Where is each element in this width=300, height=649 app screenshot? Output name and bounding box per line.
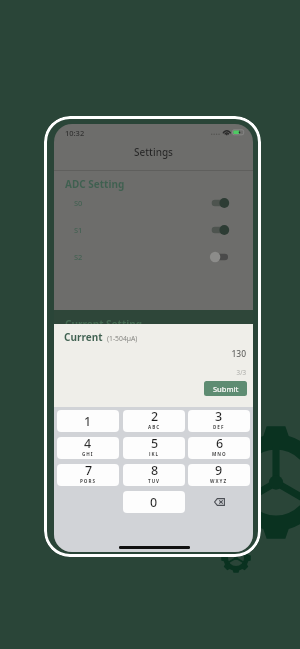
staticText: MNO: [212, 451, 227, 456]
button[interactable]: 4: [57, 437, 119, 459]
button[interactable]: S0: [54, 189, 253, 216]
button[interactable]: 0: [123, 491, 185, 513]
staticText: S0: [74, 198, 83, 208]
button[interactable]: 2: [123, 410, 185, 432]
button[interactable]: Submit: [204, 381, 247, 396]
staticText: 130: [54, 348, 246, 360]
button[interactable]: 8: [123, 464, 185, 486]
staticText: 1: [84, 413, 92, 430]
staticText: 0: [150, 494, 158, 511]
staticText: 2: [151, 410, 159, 425]
button[interactable]: 6: [188, 437, 250, 459]
staticText: 3/3: [54, 368, 246, 376]
button[interactable]: S2: [54, 243, 253, 270]
staticText: 8: [151, 464, 159, 479]
staticText: S2: [74, 252, 83, 262]
staticText: GHI: [82, 451, 94, 456]
staticText: 7: [85, 464, 93, 479]
button[interactable]: 7: [57, 464, 119, 486]
staticText: Current Setting: [65, 317, 143, 331]
staticText: 3: [215, 410, 223, 425]
staticText: ADC Setting: [65, 177, 125, 191]
staticText: (1-504µA): [107, 334, 138, 343]
staticText: Submit: [213, 384, 239, 394]
staticText: DEF: [213, 424, 225, 429]
staticText: 6: [216, 437, 224, 452]
staticText: TUV: [148, 478, 161, 483]
staticText: 5: [151, 437, 159, 452]
staticText: WXYZ: [210, 478, 228, 483]
staticText: PQRS: [80, 478, 97, 483]
staticText: 9: [215, 464, 223, 479]
staticText: 10:32: [65, 128, 85, 138]
button[interactable]: 9: [188, 464, 250, 486]
button[interactable]: 3: [188, 410, 250, 432]
button[interactable]: Backspace: [188, 491, 250, 513]
button[interactable]: 5: [123, 437, 185, 459]
button[interactable]: 1: [57, 410, 119, 432]
button[interactable]: S1: [54, 216, 253, 243]
staticText: ABC: [148, 424, 161, 429]
staticText: S1: [74, 225, 83, 235]
staticText: JKL: [149, 451, 160, 456]
staticText: Current: [64, 330, 103, 344]
staticText: 4: [84, 437, 92, 452]
staticText: Settings: [54, 145, 253, 159]
